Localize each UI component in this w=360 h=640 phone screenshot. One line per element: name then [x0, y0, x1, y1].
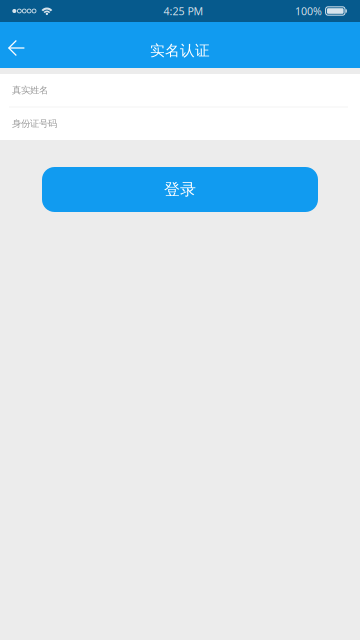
- button[interactable]: 身份证号码: [0, 107, 360, 140]
- staticText: 登录: [164, 180, 196, 199]
- button[interactable]: 登录: [42, 167, 318, 212]
- staticText: 实名认证: [150, 41, 210, 59]
- button[interactable]: Back: [0, 22, 33, 68]
- staticText: 100%: [295, 4, 322, 18]
- staticText: 身份证号码: [12, 118, 57, 129]
- button[interactable]: 真实姓名: [0, 74, 360, 106]
- staticText: 4:25 PM: [163, 4, 203, 18]
- staticText: 真实姓名: [12, 84, 48, 96]
